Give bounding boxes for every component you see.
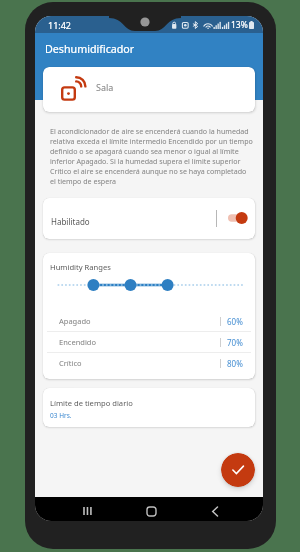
staticText: 60% [227,316,243,327]
staticText: Sala [96,81,114,93]
button[interactable]: Límite de tiempo diario [43,388,255,427]
button[interactable]: Home [144,504,158,518]
staticText: 70% [227,337,243,348]
staticText: Límite de tiempo diario [50,398,133,408]
staticText: Encendido [59,337,96,347]
staticText: Habilitado [51,216,90,227]
button[interactable]: Habilitado [43,198,255,239]
button[interactable]: Crítico [43,353,255,373]
button[interactable]: Recents [80,504,94,518]
staticText: Humidity Ranges [50,262,111,272]
button[interactable]: Confirmar [221,453,255,487]
staticText: Deshumidificador [45,42,135,57]
staticText: 11:42 [48,19,72,31]
button[interactable]: Sala [43,67,255,112]
staticText: 03 Hrs. [50,411,72,420]
button[interactable]: Apagado [43,311,255,331]
staticText: 80% [227,358,243,369]
button[interactable] [228,211,249,225]
staticText: El acondicionador de aire se encenderá c… [50,126,253,186]
staticText: 13% [231,19,248,31]
staticText: Crítico [59,358,82,368]
staticText: Apagado [59,316,91,326]
button[interactable]: Encendido [43,332,255,352]
button[interactable]: Back [208,504,222,518]
